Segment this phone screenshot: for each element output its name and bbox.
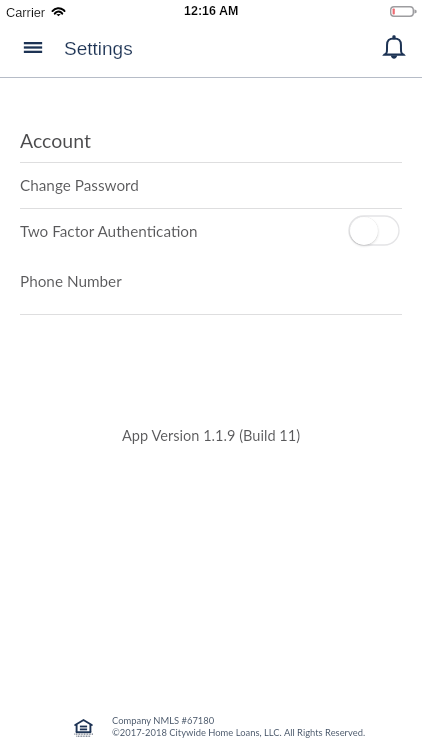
staticText: Change Password [20, 176, 139, 194]
button[interactable]: Notifications [371, 20, 417, 74]
button[interactable]: Two Factor Authentication toggle [349, 216, 399, 245]
button[interactable]: Change Password [0, 173, 422, 197]
staticText: Company NMLS #67180 [112, 715, 215, 726]
staticText: Phone Number [20, 272, 122, 290]
staticText: 12:16 AM [184, 4, 239, 18]
staticText: Carrier [6, 5, 46, 19]
button[interactable]: Phone Number [0, 269, 422, 293]
button[interactable]: Open navigation menu [8, 24, 58, 78]
button[interactable]: Two Factor Authentication [0, 219, 422, 243]
staticText: Account [20, 129, 91, 152]
staticText: App Version 1.1.9 (Build 11) [122, 427, 301, 445]
staticText: Settings [64, 38, 133, 59]
staticText: Two Factor Authentication [20, 222, 198, 240]
staticText: ©2017-2018 Citywide Home Loans, LLC. All… [112, 727, 366, 738]
